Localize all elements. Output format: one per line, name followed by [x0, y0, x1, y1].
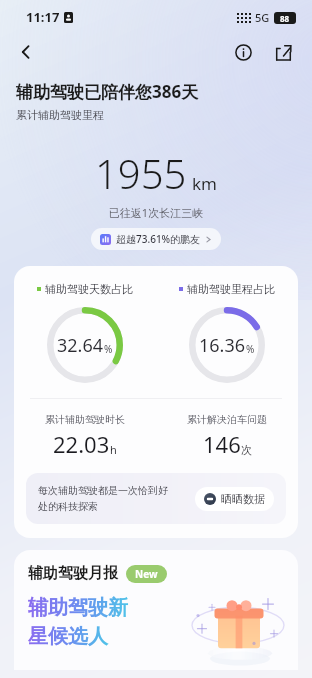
staticText: 累计辅助驾驶里程	[16, 108, 104, 122]
staticText: h	[110, 442, 117, 457]
staticText: 辅助驾驶月报	[28, 564, 118, 583]
staticText: %	[246, 342, 255, 356]
staticText: 11:17	[26, 8, 60, 26]
staticText: 辅助驾驶已陪伴您386天	[16, 80, 199, 103]
staticText: 辅助驾驶新	[28, 595, 128, 620]
button[interactable]: Info	[228, 37, 258, 67]
staticText: 辅助驾驶里程占比	[187, 282, 275, 296]
staticText: 辅助驾驶天数占比	[45, 282, 133, 296]
staticText: %	[104, 342, 113, 356]
button[interactable]: Share	[268, 37, 298, 67]
staticText: 星候选人	[28, 624, 108, 649]
staticText: 16.36	[199, 333, 246, 358]
staticText: 处的科技探索	[38, 500, 98, 513]
staticText: New	[135, 567, 158, 581]
staticText: 22.03	[53, 429, 110, 459]
button[interactable]: 超越73.61%的鹏友	[91, 228, 221, 250]
staticText: 超越73.61%的鹏友	[116, 232, 201, 246]
staticText: 已往返1次长江三峡	[0, 205, 312, 220]
staticText: 累计辅助驾驶时长	[45, 413, 125, 426]
staticText: 5G	[255, 10, 270, 25]
staticText: km	[192, 172, 217, 195]
staticText: 146	[203, 429, 241, 459]
staticText: 晒晒数据	[221, 492, 265, 506]
button[interactable]: 晒晒数据	[195, 487, 274, 511]
button[interactable]: 辅助驾驶月报	[14, 550, 298, 670]
button[interactable]: 每次辅助驾驶都是一次恰到好	[26, 473, 286, 524]
staticText: 32.64	[57, 333, 104, 358]
staticText: 累计解决泊车问题	[187, 413, 267, 426]
staticText: 1955	[95, 146, 187, 200]
staticText: 每次辅助驾驶都是一次恰到好	[38, 484, 168, 497]
staticText: 88	[280, 13, 290, 24]
button[interactable]: Back	[10, 36, 42, 68]
staticText: 次	[241, 443, 252, 457]
